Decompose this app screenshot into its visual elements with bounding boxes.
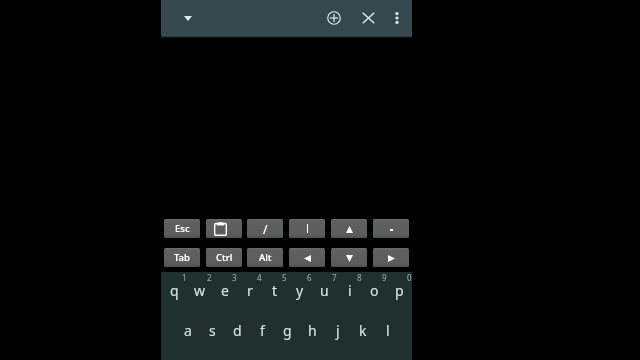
- staticText: y: [296, 281, 304, 300]
- button[interactable]: a: [174, 312, 199, 351]
- staticText: a: [184, 321, 192, 340]
- button[interactable]: j: [324, 312, 349, 351]
- button[interactable]: t: [261, 272, 286, 311]
- staticText: t: [272, 281, 278, 300]
- staticText: q: [170, 281, 179, 300]
- button[interactable]: More options: [382, 3, 412, 33]
- staticText: l: [386, 321, 390, 340]
- button[interactable]: r: [236, 272, 261, 311]
- staticText: Tab: [174, 251, 190, 264]
- staticText: u: [320, 281, 329, 300]
- staticText: r: [247, 281, 253, 300]
- button[interactable]: Arrow up: [331, 219, 367, 238]
- staticText: s: [209, 321, 216, 340]
- staticText: g: [283, 321, 292, 340]
- staticText: d: [233, 321, 242, 340]
- button[interactable]: Esc: [164, 219, 200, 238]
- staticText: 5: [282, 272, 287, 283]
- button[interactable]: k: [349, 312, 374, 351]
- button[interactable]: Arrow left: [289, 248, 325, 267]
- button[interactable]: w: [186, 272, 211, 311]
- staticText: j: [336, 321, 340, 340]
- staticText: 8: [357, 272, 362, 283]
- button[interactable]: q: [161, 272, 186, 311]
- staticText: f: [260, 321, 265, 340]
- button[interactable]: Slash: [247, 219, 283, 238]
- button[interactable]: Alt: [247, 248, 283, 267]
- button[interactable]: Arrow down: [331, 248, 367, 267]
- button[interactable]: Dash: [373, 219, 409, 238]
- staticText: k: [359, 321, 367, 340]
- button[interactable]: u: [311, 272, 336, 311]
- staticText: 1: [182, 272, 187, 283]
- button[interactable]: y: [286, 272, 311, 311]
- staticText: Alt: [259, 251, 272, 264]
- button[interactable]: Paste from clipboard: [206, 219, 242, 238]
- staticText: 9: [382, 272, 387, 283]
- staticText: 2: [207, 272, 212, 283]
- staticText: h: [308, 321, 317, 340]
- staticText: 3: [232, 272, 237, 283]
- staticText: Ctrl: [216, 251, 233, 264]
- staticText: /: [263, 221, 268, 237]
- button[interactable]: l: [374, 312, 399, 351]
- staticText: 0: [407, 272, 412, 283]
- button[interactable]: Close session: [353, 3, 383, 33]
- staticText: w: [194, 281, 206, 300]
- button[interactable]: Ctrl: [206, 248, 242, 267]
- staticText: o: [370, 281, 379, 300]
- button[interactable]: e: [211, 272, 236, 311]
- staticText: 4: [257, 272, 262, 283]
- button[interactable]: p: [386, 272, 411, 311]
- staticText: p: [395, 281, 404, 300]
- button[interactable]: i: [336, 272, 361, 311]
- button[interactable]: d: [224, 312, 249, 351]
- button[interactable]: h: [299, 312, 324, 351]
- button[interactable]: o: [361, 272, 386, 311]
- button[interactable]: s: [199, 312, 224, 351]
- staticText: 7: [332, 272, 337, 283]
- staticText: i: [348, 281, 352, 300]
- button[interactable]: Tab: [164, 248, 200, 267]
- staticText: e: [221, 281, 229, 300]
- button[interactable]: Arrow right: [373, 248, 409, 267]
- button[interactable]: f: [249, 312, 274, 351]
- staticText: Esc: [175, 222, 190, 235]
- button[interactable]: Sessions: [173, 3, 203, 33]
- staticText: 6: [307, 272, 312, 283]
- button[interactable]: g: [274, 312, 299, 351]
- button[interactable]: New session: [319, 3, 349, 33]
- button[interactable]: Pipe: [289, 219, 325, 238]
